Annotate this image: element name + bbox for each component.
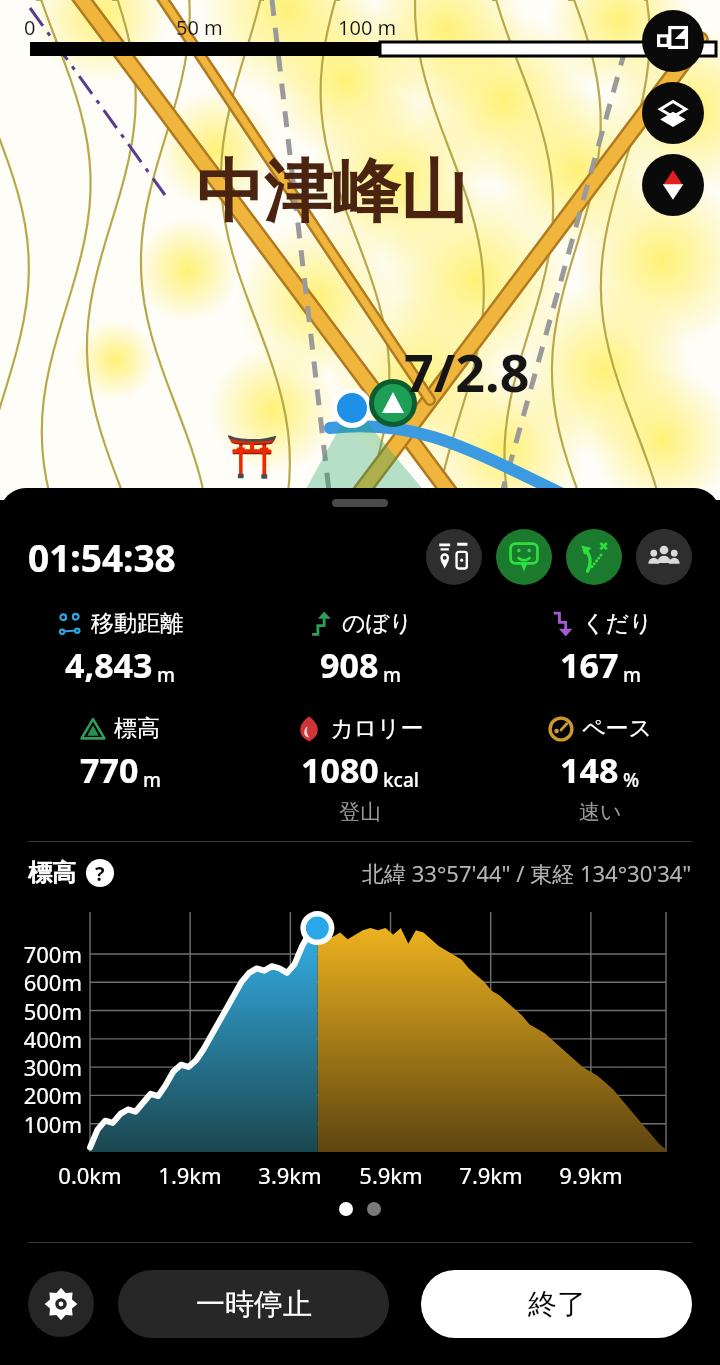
staticText: 3.9km [244, 1160, 336, 1190]
button[interactable]: Map layers [642, 82, 704, 144]
button[interactable]: 終了 [421, 1270, 692, 1338]
staticText: 9.9km [545, 1160, 637, 1190]
button[interactable]: 移動距離 [0, 609, 240, 688]
staticText: 400m [8, 1024, 82, 1054]
staticText: 0 [24, 14, 36, 41]
staticText: m [157, 662, 175, 688]
staticText: 5.9km [345, 1160, 437, 1190]
staticText: m [623, 662, 641, 688]
staticText: 1080 [301, 747, 379, 793]
staticText: 一時停止 [196, 1286, 312, 1323]
staticText: 終了 [528, 1286, 586, 1323]
button[interactable]: Messages [496, 529, 552, 585]
staticText: 167 [560, 642, 619, 688]
staticText: 7.9km [445, 1160, 537, 1190]
staticText: のぼり [342, 609, 413, 638]
button[interactable]: Group [636, 529, 692, 585]
staticText: 01:54:38 [28, 532, 176, 582]
staticText: 北緯 33°57'44" / 東経 134°30'34" [362, 858, 692, 888]
staticText: 100m [8, 1109, 82, 1139]
button[interactable]: Fullscreen [642, 10, 704, 72]
staticText: 1.9km [144, 1160, 236, 1190]
button[interactable]: Route [566, 529, 622, 585]
staticText: 770 [80, 747, 139, 793]
staticText: 中津峰山 [196, 150, 468, 236]
staticText: 登山 [339, 799, 381, 825]
staticText: ⛩ [226, 432, 279, 481]
staticText: 200m [8, 1080, 82, 1110]
staticText: 100 m [338, 14, 397, 41]
staticText: 148 [560, 747, 619, 793]
staticText: 標高 [28, 858, 76, 888]
staticText: 300m [8, 1052, 82, 1082]
staticText: 4,843 [65, 642, 153, 688]
button[interactable]: 標高 [0, 714, 240, 793]
staticText: kcal [383, 767, 419, 793]
button[interactable]: くだり [480, 609, 720, 688]
staticText: くだり [582, 609, 653, 638]
button[interactable]: カロリー [240, 714, 480, 825]
staticText: 500m [8, 996, 82, 1026]
staticText: ? [95, 860, 105, 887]
button[interactable]: 一時停止 [118, 1270, 389, 1338]
staticText: 移動距離 [91, 609, 183, 638]
staticText: 速い [579, 799, 622, 825]
button[interactable]: のぼり [240, 609, 480, 688]
button[interactable]: Waypoints [426, 529, 482, 585]
staticText: 50 m [176, 14, 223, 41]
button[interactable]: Settings [28, 1271, 94, 1337]
staticText: 標高 [114, 714, 160, 743]
staticText: 0.0km [44, 1160, 136, 1190]
staticText: ペース [582, 714, 653, 743]
staticText: % [623, 767, 640, 793]
staticText: m [143, 767, 161, 793]
button[interactable]: ペース [480, 714, 720, 825]
staticText: 7/2.8 [404, 336, 530, 407]
staticText: 700m [8, 939, 82, 969]
staticText: m [383, 662, 401, 688]
staticText: カロリー [330, 714, 424, 743]
staticText: 908 [320, 642, 379, 688]
button[interactable]: Help [86, 859, 114, 887]
staticText: 600m [8, 967, 82, 997]
button[interactable]: Compass [642, 154, 704, 216]
